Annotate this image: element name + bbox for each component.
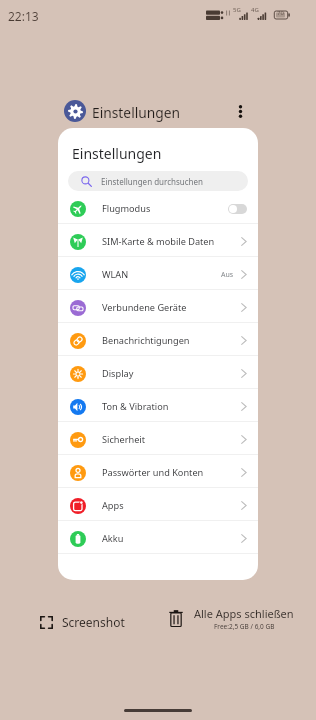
staticText: Verbundene Geräte: [102, 301, 187, 314]
staticText: 70: [277, 9, 284, 17]
button[interactable]: Screenshot: [34, 609, 131, 635]
button[interactable]: Apps: [58, 488, 258, 520]
staticText: Sicherheit: [102, 433, 146, 446]
staticText: Passwörter und Konten: [102, 466, 204, 479]
button[interactable]: WLAN: [58, 257, 258, 289]
button[interactable]: Flugmodus: [58, 191, 258, 223]
button[interactable]: Verbundene Geräte: [58, 290, 258, 322]
button[interactable]: Passwörter und Konten: [58, 455, 258, 487]
staticText: Aus: [221, 270, 234, 280]
button[interactable]: Sicherheit: [58, 422, 258, 454]
staticText: 5G: [233, 6, 241, 14]
staticText: Akku: [102, 532, 124, 545]
staticText: Screenshot: [62, 614, 125, 630]
staticText: Einstellungen durchsuchen: [101, 176, 203, 187]
button[interactable]: Benachrichtigungen: [58, 323, 258, 355]
staticText: Apps: [102, 499, 124, 512]
staticText: Free:2,5 GB / 6,0 GB: [214, 622, 275, 631]
button[interactable]: Akku: [58, 521, 258, 553]
staticText: Einstellungen: [72, 144, 162, 163]
button[interactable]: Display: [58, 356, 258, 388]
button[interactable]: Ton & Vibration: [58, 389, 258, 421]
button[interactable]: SIM-Karte & mobile Daten: [58, 224, 258, 256]
button[interactable]: Toggle: [228, 204, 247, 214]
staticText: Alle Apps schließen: [194, 606, 294, 621]
staticText: Ton & Vibration: [102, 400, 169, 413]
staticText: SIM-Karte & mobile Daten: [102, 235, 215, 248]
staticText: Benachrichtigungen: [102, 334, 190, 347]
button[interactable]: Einstellungen: [92, 103, 181, 122]
staticText: 4G: [251, 6, 259, 14]
button[interactable]: Einstellungen durchsuchen: [68, 171, 248, 191]
button[interactable]: More options: [228, 99, 252, 123]
staticText: Flugmodus: [102, 202, 151, 215]
staticText: WLAN: [102, 268, 129, 281]
button[interactable]: Alle Apps schließen: [163, 602, 300, 635]
staticText: Display: [102, 367, 134, 380]
staticText: 22:13: [8, 8, 39, 24]
